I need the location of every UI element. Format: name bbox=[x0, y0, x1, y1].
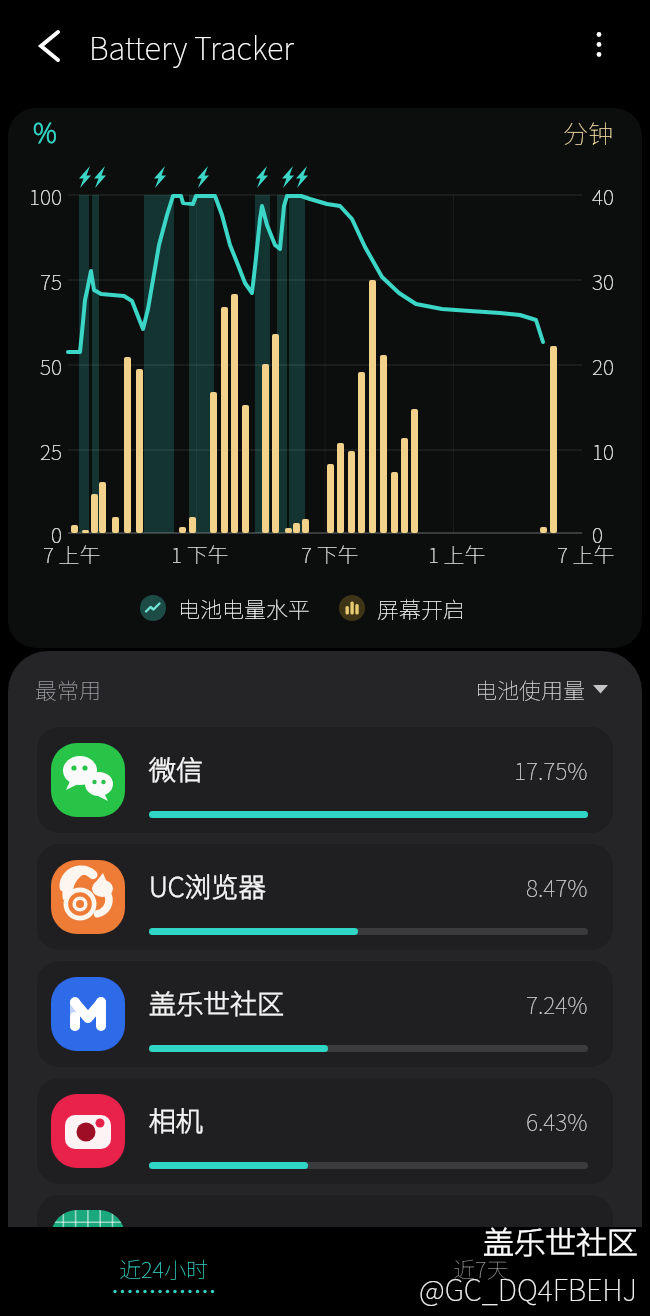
staticText: 40 bbox=[592, 181, 614, 211]
staticText: 8.47% bbox=[526, 870, 588, 903]
staticText: 25 bbox=[40, 436, 62, 466]
staticText: 6.43% bbox=[526, 1104, 588, 1137]
staticText: 100 bbox=[29, 181, 62, 211]
staticText: 10 bbox=[592, 436, 614, 466]
staticText: 近24小时 bbox=[119, 1252, 208, 1284]
staticText: 电池电量水平 bbox=[178, 592, 311, 624]
staticText: 盖乐世社区 bbox=[483, 1218, 638, 1263]
button[interactable]: 相机 bbox=[37, 1078, 613, 1184]
staticText: 7.24% bbox=[526, 987, 588, 1020]
staticText: 20 bbox=[592, 351, 614, 381]
staticText: % bbox=[33, 112, 57, 151]
button[interactable] bbox=[575, 20, 623, 68]
staticText: Battery Tracker bbox=[89, 24, 294, 69]
staticText: 30 bbox=[592, 266, 614, 296]
staticText: 17.75% bbox=[514, 753, 588, 786]
staticText: 1 上午 bbox=[428, 539, 486, 569]
button[interactable] bbox=[37, 1195, 613, 1227]
staticText: 分钟 bbox=[563, 114, 614, 150]
staticText: 7 下午 bbox=[301, 539, 359, 569]
staticText: 盖乐世社区 bbox=[149, 983, 284, 1022]
button[interactable]: 近24小时 bbox=[103, 1252, 223, 1304]
staticText: 0 bbox=[592, 519, 603, 549]
staticText: 75 bbox=[40, 266, 62, 296]
button[interactable] bbox=[26, 22, 74, 70]
button[interactable]: 电池使用量 bbox=[475, 673, 608, 705]
staticText: 0 bbox=[51, 519, 62, 549]
staticText: @GC_DQ4FBEHJ bbox=[419, 1267, 638, 1309]
staticText: 50 bbox=[40, 351, 62, 381]
staticText: UC浏览器 bbox=[149, 866, 266, 905]
staticText: 1 下午 bbox=[171, 539, 229, 569]
staticText: 7 上午 bbox=[43, 539, 101, 569]
button[interactable]: 微信 bbox=[37, 727, 613, 833]
staticText: 7 上午 bbox=[557, 539, 615, 569]
button[interactable]: 近7天 bbox=[421, 1252, 541, 1304]
staticText: 屏幕开启 bbox=[377, 592, 466, 624]
staticText: 最常用 bbox=[35, 673, 102, 705]
staticText: 微信 bbox=[149, 749, 203, 788]
staticText: 近7天 bbox=[453, 1252, 509, 1284]
button[interactable]: UC浏览器 bbox=[37, 844, 613, 950]
staticText: 电池使用量 bbox=[475, 673, 586, 705]
button[interactable]: 盖乐世社区 bbox=[37, 961, 613, 1067]
staticText: 相机 bbox=[149, 1100, 203, 1139]
